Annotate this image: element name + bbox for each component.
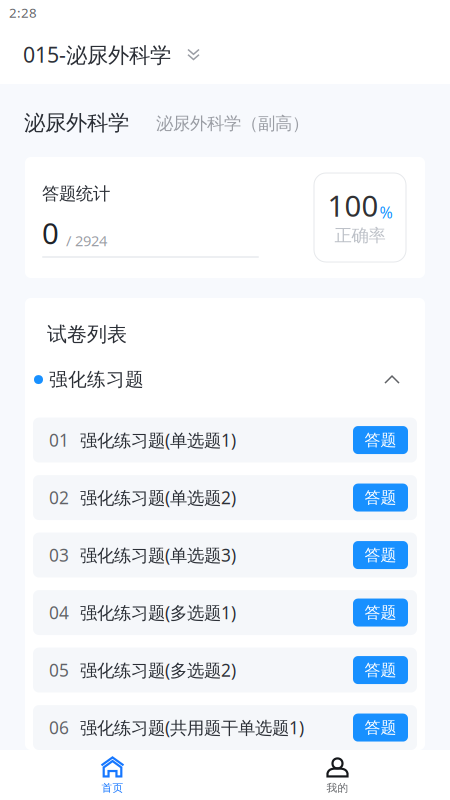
staticText: 05 — [49, 659, 69, 682]
staticText: / 2924 — [66, 231, 107, 250]
staticText: 答题 — [364, 718, 396, 737]
staticText: 04 — [49, 601, 69, 624]
button[interactable]: 06 — [33, 705, 417, 750]
staticText: 2:28 — [9, 4, 37, 21]
button[interactable]: 01 — [33, 418, 417, 463]
button[interactable]: 04 — [33, 590, 417, 635]
button[interactable]: 强化练习题 — [25, 358, 425, 402]
staticText: 03 — [49, 544, 69, 567]
staticText: 强化练习题(共用题干单选题1) — [80, 716, 304, 739]
staticText: % — [379, 202, 392, 223]
staticText: 强化练习题(单选题2) — [80, 486, 236, 509]
staticText: 首页 — [101, 781, 123, 794]
staticText: 强化练习题(单选题1) — [80, 429, 236, 452]
staticText: 02 — [49, 486, 69, 509]
staticText: 01 — [49, 429, 69, 452]
button[interactable]: 首页 — [0, 750, 225, 800]
staticText: 强化练习题(多选题2) — [80, 659, 236, 682]
staticText: 强化练习题(多选题1) — [80, 601, 236, 624]
button[interactable]: 03 — [33, 533, 417, 578]
button[interactable]: 02 — [33, 475, 417, 520]
staticText: 泌尿外科学 — [24, 110, 129, 136]
staticText: 试卷列表 — [47, 322, 127, 347]
staticText: 答题 — [364, 660, 396, 680]
staticText: 答题统计 — [42, 183, 110, 204]
staticText: 强化练习题(单选题3) — [80, 544, 236, 567]
staticText: 015-泌尿外科学 — [23, 40, 171, 69]
staticText: 正确率 — [334, 225, 385, 246]
staticText: 答题 — [364, 603, 396, 622]
button[interactable]: 05 — [33, 648, 417, 693]
staticText: 0 — [42, 213, 59, 252]
staticText: 答题 — [364, 488, 396, 507]
staticText: 100 — [327, 186, 378, 225]
staticText: 我的 — [326, 781, 348, 794]
button[interactable]: 我的 — [225, 750, 450, 800]
staticText: 答题 — [364, 430, 396, 450]
staticText: 强化练习题 — [49, 368, 144, 391]
staticText: 答题 — [364, 545, 396, 565]
staticText: 06 — [49, 716, 69, 739]
staticText: 泌尿外科学（副高） — [156, 113, 309, 134]
